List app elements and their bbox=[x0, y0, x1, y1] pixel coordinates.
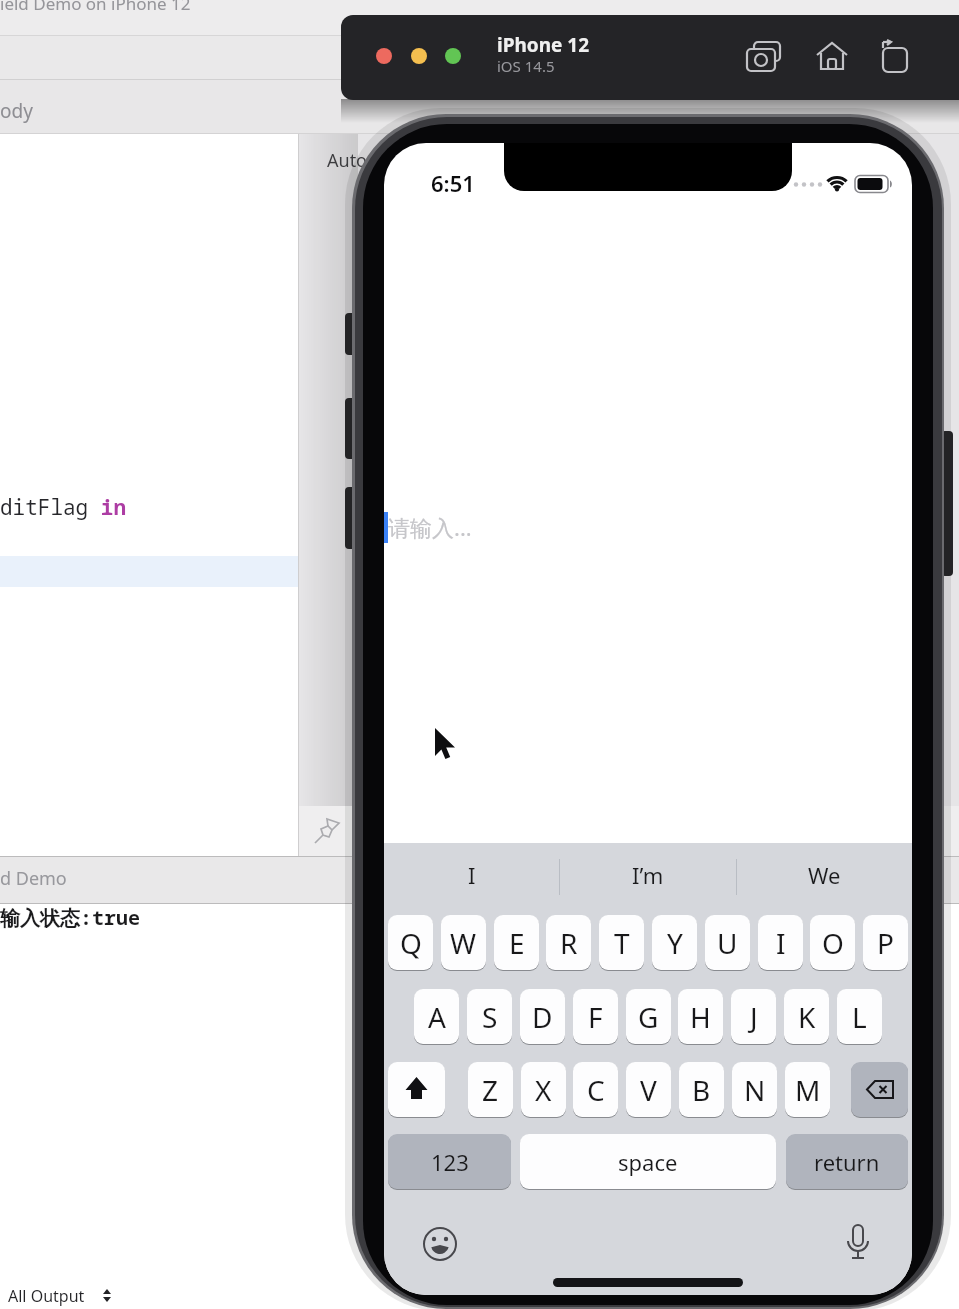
staticText: F bbox=[588, 998, 603, 1036]
button[interactable] bbox=[384, 501, 912, 553]
button[interactable]: space bbox=[520, 1134, 776, 1189]
staticText: I’m bbox=[632, 860, 664, 890]
staticText: E bbox=[509, 924, 525, 962]
button[interactable]: T bbox=[599, 915, 644, 970]
button[interactable]: J bbox=[731, 989, 776, 1044]
staticText: ditFlag in bbox=[0, 493, 126, 522]
button[interactable] bbox=[422, 1226, 458, 1262]
staticText: space bbox=[618, 1147, 678, 1177]
button[interactable]: F bbox=[573, 989, 618, 1044]
staticText: I bbox=[776, 924, 786, 962]
staticText: X bbox=[535, 1071, 552, 1109]
staticText: ody bbox=[0, 98, 33, 124]
button[interactable]: K bbox=[784, 989, 829, 1044]
staticText: C bbox=[587, 1071, 605, 1109]
staticText: J bbox=[750, 998, 758, 1036]
staticText: L bbox=[852, 998, 867, 1036]
button[interactable]: M bbox=[785, 1062, 830, 1117]
staticText: Y bbox=[667, 924, 683, 962]
staticText: d Demo bbox=[0, 866, 67, 891]
staticText: iOS 14.5 bbox=[497, 56, 555, 76]
staticText: P bbox=[877, 924, 894, 962]
button[interactable]: Q bbox=[388, 915, 433, 970]
staticText: B bbox=[692, 1071, 711, 1109]
button[interactable] bbox=[877, 40, 913, 76]
staticText: I bbox=[468, 860, 476, 890]
button[interactable] bbox=[745, 40, 789, 76]
staticText: O bbox=[822, 924, 844, 962]
button[interactable]: Y bbox=[652, 915, 697, 970]
button[interactable] bbox=[815, 41, 851, 75]
button[interactable]: We bbox=[736, 847, 912, 902]
button[interactable]: G bbox=[626, 989, 671, 1044]
button[interactable] bbox=[388, 1062, 445, 1117]
button[interactable]: P bbox=[863, 915, 908, 970]
button[interactable]: I bbox=[758, 915, 803, 970]
button[interactable]: A bbox=[414, 989, 459, 1044]
button[interactable]: U bbox=[705, 915, 750, 970]
staticText: V bbox=[640, 1071, 657, 1109]
button[interactable]: I’m bbox=[560, 847, 736, 902]
staticText: Q bbox=[400, 924, 422, 962]
button[interactable] bbox=[851, 1062, 908, 1117]
button[interactable]: C bbox=[573, 1062, 618, 1117]
button[interactable]: I bbox=[384, 847, 560, 902]
staticText: A bbox=[428, 998, 446, 1036]
staticText: 123 bbox=[431, 1147, 469, 1177]
button[interactable]: E bbox=[494, 915, 539, 970]
staticText: 输入状态:true bbox=[0, 904, 140, 931]
button[interactable]: O bbox=[810, 915, 855, 970]
staticText: T bbox=[614, 924, 630, 962]
button[interactable]: D bbox=[520, 989, 565, 1044]
staticText: K bbox=[798, 998, 816, 1036]
staticText: G bbox=[638, 998, 659, 1036]
button[interactable]: H bbox=[678, 989, 723, 1044]
button[interactable] bbox=[844, 1223, 872, 1269]
button[interactable]: S bbox=[467, 989, 512, 1044]
staticText: R bbox=[560, 924, 578, 962]
staticText: We bbox=[808, 860, 841, 890]
staticText: 请输入... bbox=[388, 512, 472, 542]
staticText: H bbox=[690, 998, 711, 1036]
staticText: W bbox=[450, 924, 477, 962]
button[interactable]: Z bbox=[468, 1062, 513, 1117]
staticText: N bbox=[744, 1071, 766, 1109]
button[interactable]: 123 bbox=[388, 1134, 511, 1189]
button[interactable]: V bbox=[626, 1062, 671, 1117]
button[interactable]: R bbox=[546, 915, 591, 970]
staticText: Z bbox=[482, 1071, 499, 1109]
button[interactable]: B bbox=[679, 1062, 724, 1117]
staticText: iPhone 12 bbox=[497, 32, 590, 58]
button[interactable]: X bbox=[521, 1062, 566, 1117]
staticText: U bbox=[717, 924, 738, 962]
staticText: M bbox=[795, 1071, 821, 1109]
staticText: S bbox=[482, 998, 498, 1036]
staticText: ield Demo on iPhone 12 bbox=[0, 0, 191, 15]
staticText: return bbox=[814, 1147, 880, 1177]
staticText: Auto bbox=[327, 148, 368, 173]
button[interactable]: N bbox=[732, 1062, 777, 1117]
staticText: All Output bbox=[8, 1285, 85, 1307]
button[interactable]: L bbox=[837, 989, 882, 1044]
button[interactable]: W bbox=[441, 915, 486, 970]
staticText: 6:51 bbox=[431, 168, 475, 198]
staticText: D bbox=[532, 998, 553, 1036]
button[interactable]: return bbox=[786, 1134, 908, 1189]
